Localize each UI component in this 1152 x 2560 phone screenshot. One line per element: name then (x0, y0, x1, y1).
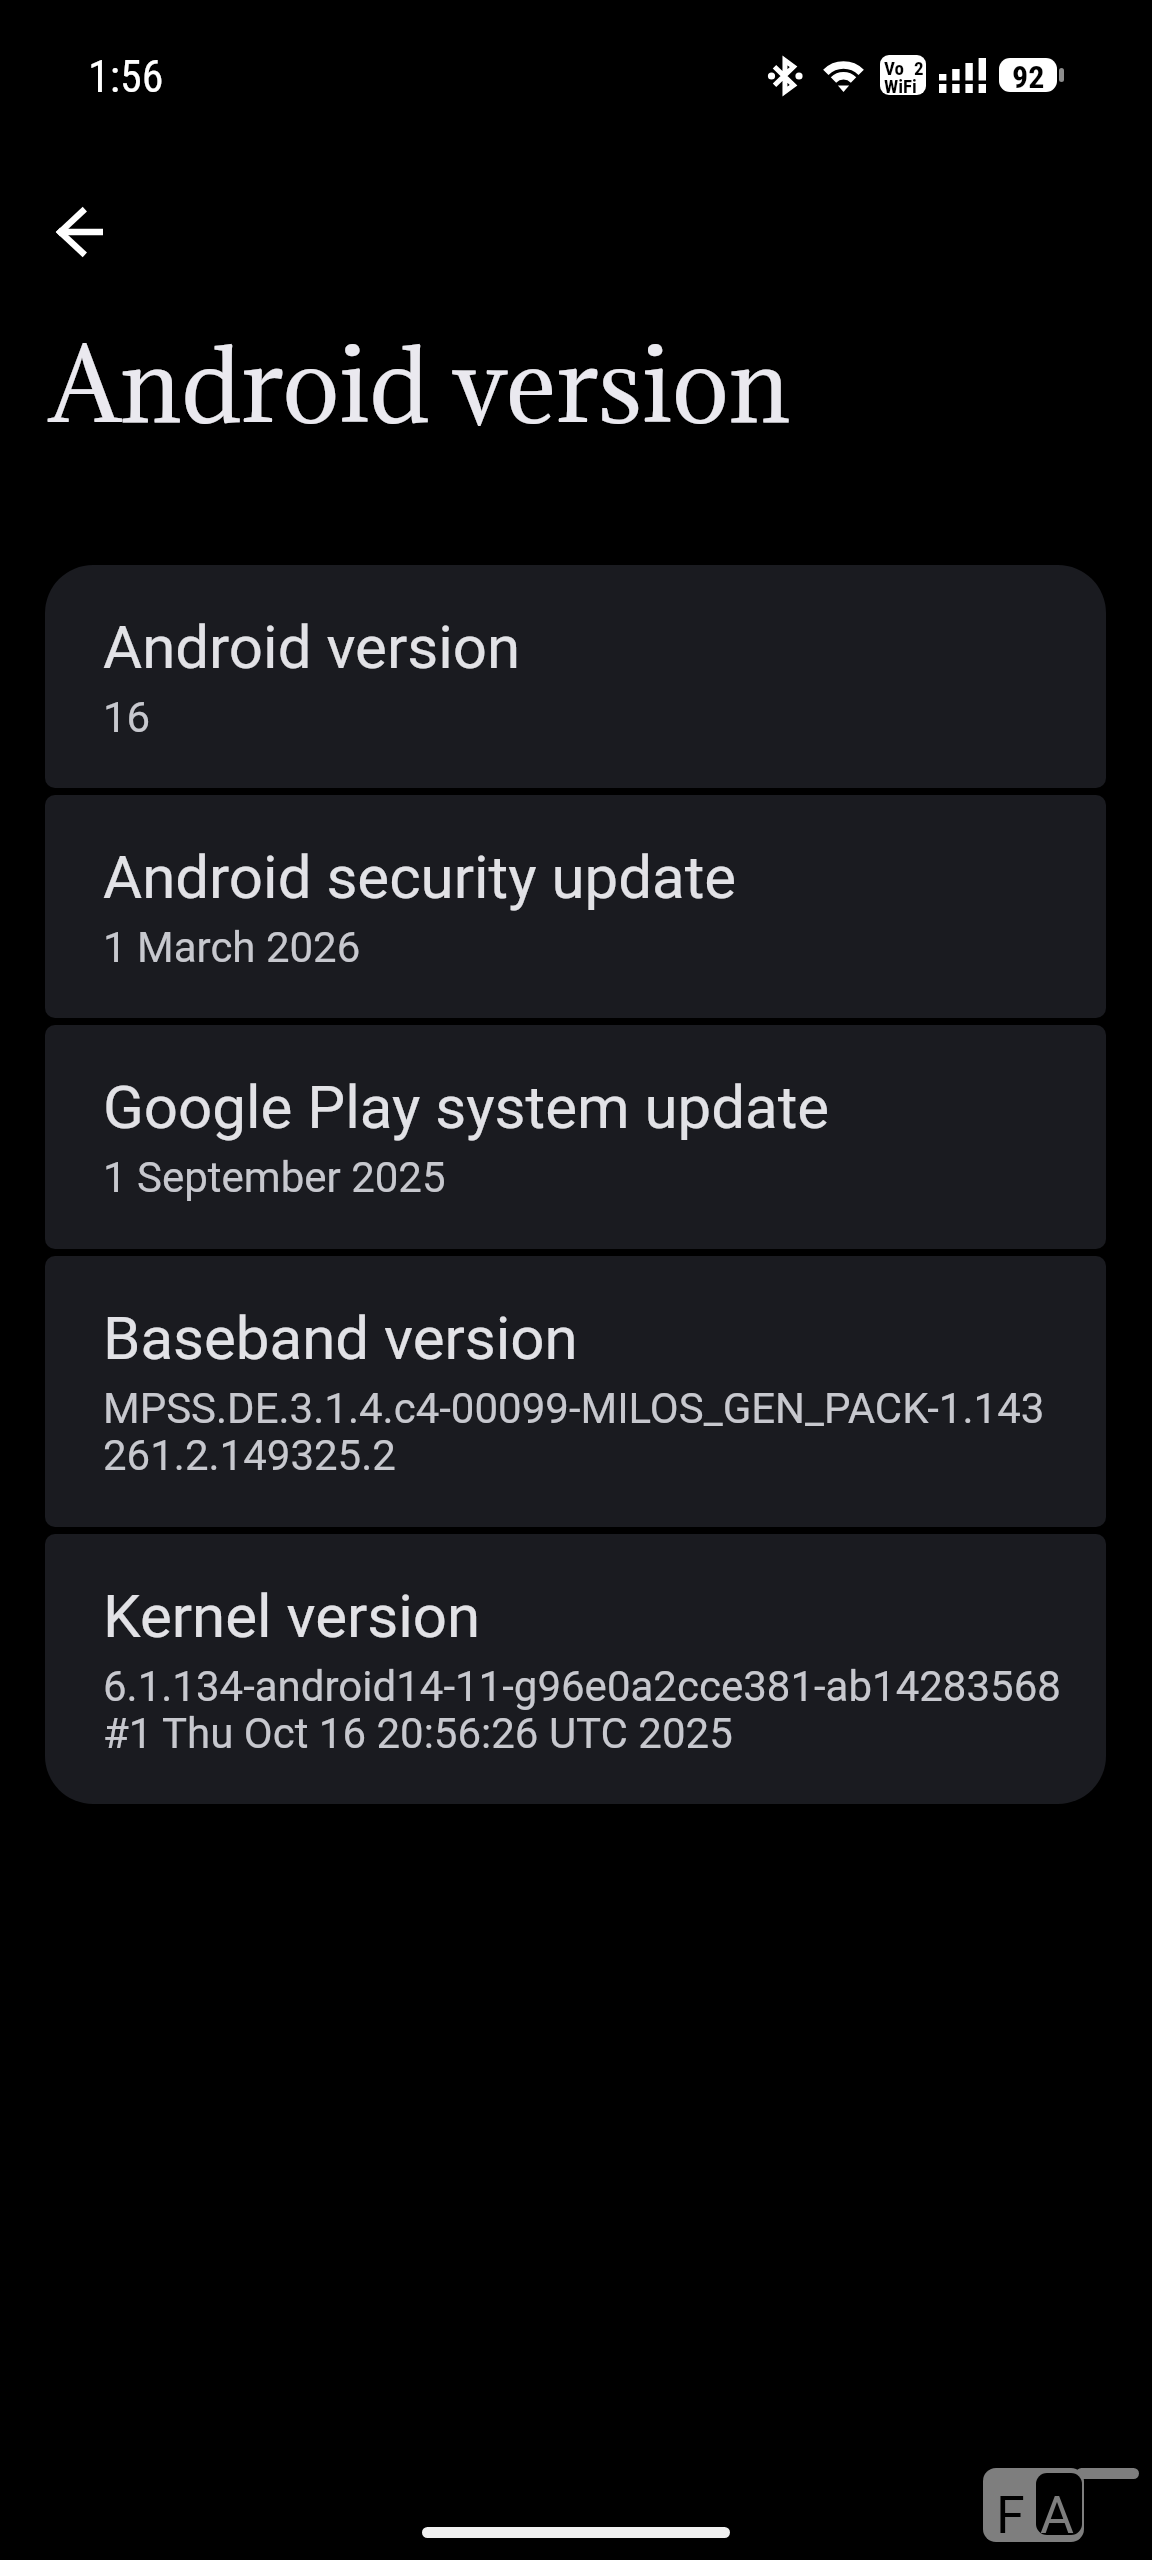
staticText: 1 March 2026 (103, 923, 361, 972)
button[interactable]: Baseband version (45, 1256, 1106, 1527)
staticText: Kernel version (103, 1581, 481, 1651)
staticText: Android version (103, 612, 521, 682)
staticText: 1 September 2025 (103, 1153, 446, 1202)
button[interactable]: Back (33, 185, 126, 278)
staticText: 261.2.149325.2 (103, 1431, 396, 1480)
staticText: MPSS.DE.3.1.4.c4-00099-MILOS_GEN_PACK-1.… (103, 1384, 1045, 1433)
staticText: #1 Thu Oct 16 20:56:26 UTC 2025 (103, 1709, 733, 1758)
staticText: 1:56 (88, 54, 164, 102)
staticText: A (1040, 2485, 1074, 2546)
staticText: Android security update (103, 842, 737, 912)
staticText: 16 (103, 693, 151, 742)
staticText: 6.1.134-android14-11-g96e0a2cce381-ab142… (103, 1662, 1061, 1711)
button[interactable]: Android security update (45, 795, 1106, 1018)
button[interactable]: Google Play system update (45, 1025, 1106, 1249)
staticText: 92 (1012, 58, 1045, 92)
button[interactable]: Kernel version (45, 1534, 1106, 1804)
staticText: Vo (884, 57, 905, 79)
button[interactable]: Android version (45, 565, 1106, 788)
staticText: WiFi (884, 75, 917, 95)
staticText: Baseband version (103, 1303, 578, 1373)
staticText: F (996, 2485, 1025, 2546)
staticText: 2 (914, 57, 924, 79)
staticText: Google Play system update (103, 1072, 830, 1142)
staticText: Android version (49, 328, 790, 448)
